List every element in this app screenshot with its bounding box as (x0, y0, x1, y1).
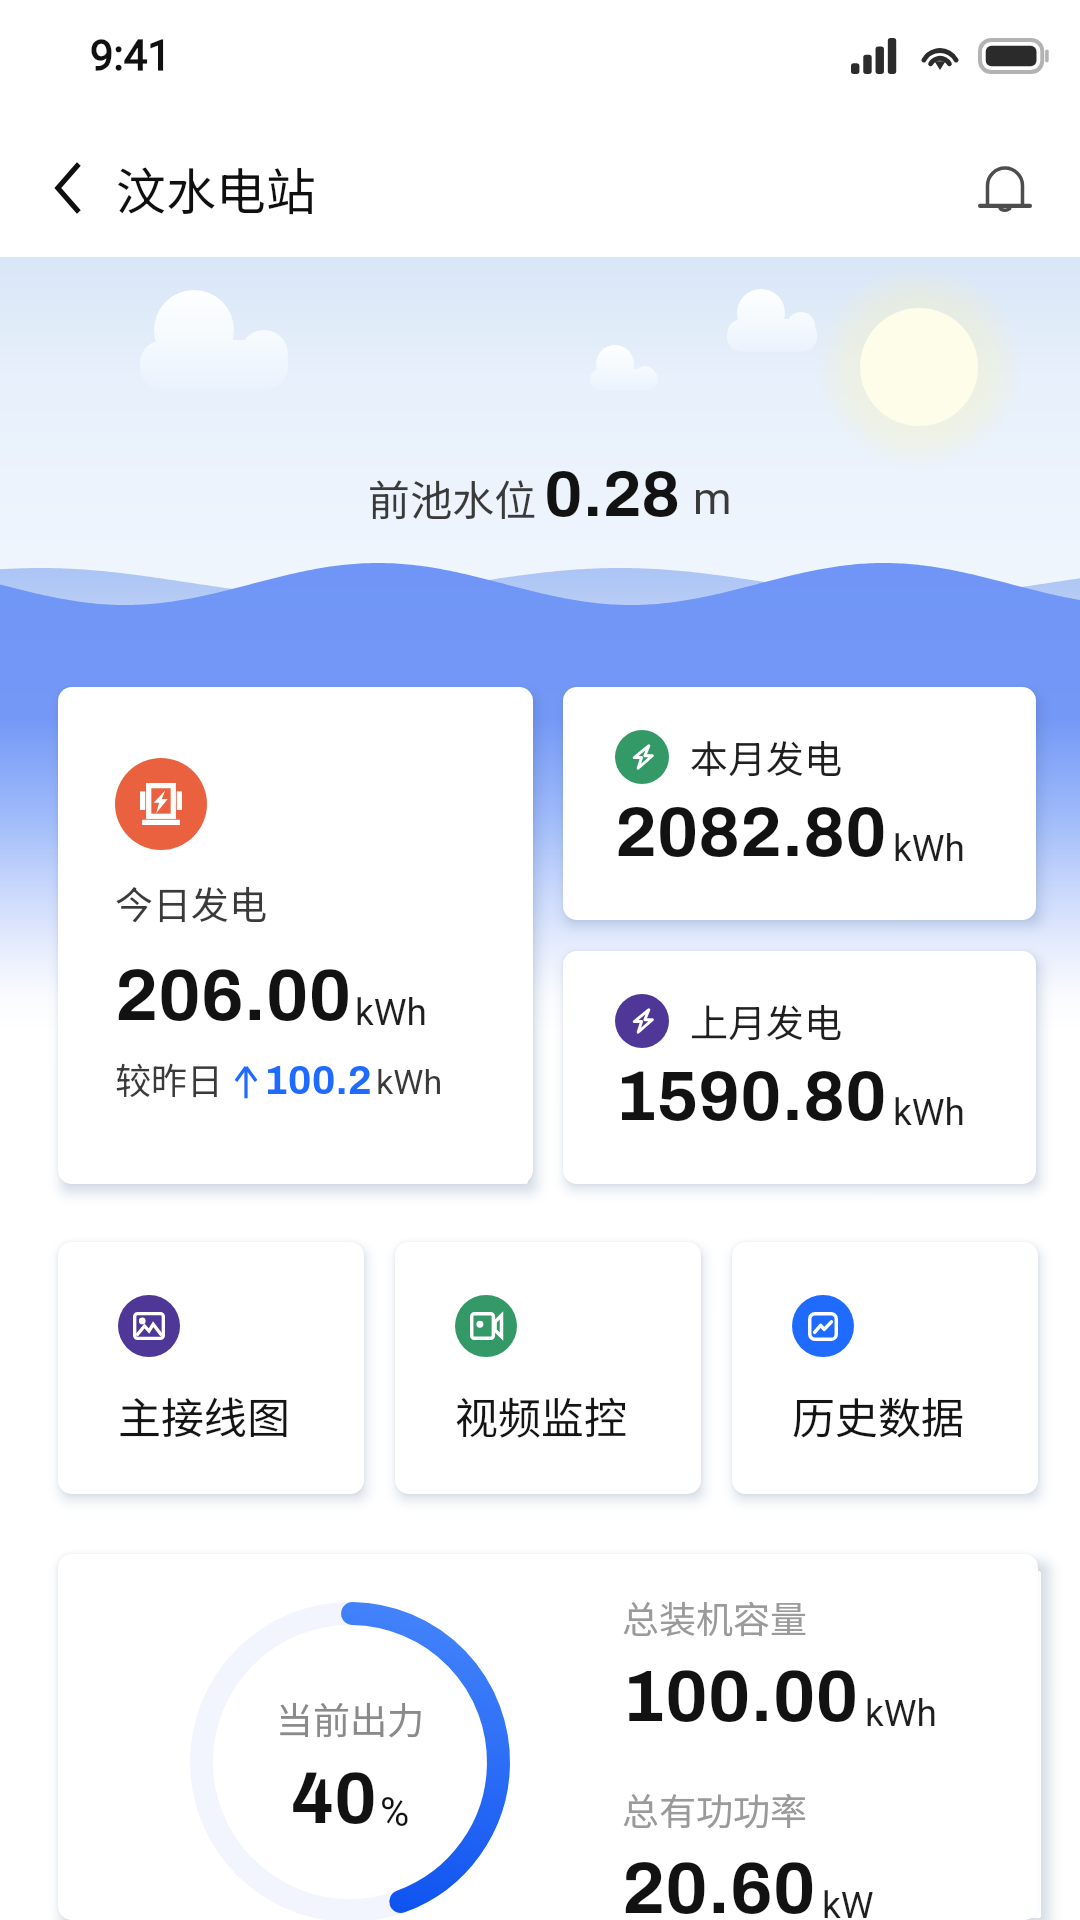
staticText: 100.2 (264, 1059, 372, 1103)
staticText: 主接线图 (118, 1384, 290, 1446)
staticText: 本月发电 (690, 729, 843, 784)
staticText: 1590.80 (615, 1059, 887, 1135)
button[interactable]: 历史数据 (732, 1242, 1038, 1494)
staticText: 总装机容量 (622, 1590, 807, 1644)
staticText: % (380, 1789, 410, 1836)
button[interactable]: 本月发电 (563, 687, 1036, 920)
staticText: 上月发电 (690, 993, 843, 1048)
staticText: 206.00 (115, 957, 352, 1035)
other: Back (38, 158, 98, 218)
staticText: 40 (291, 1760, 377, 1838)
staticText: 0.28 (544, 459, 681, 530)
staticText: 视频监控 (455, 1384, 627, 1446)
button[interactable]: 当前出力 (58, 1554, 1038, 1920)
staticText: 历史数据 (792, 1384, 964, 1446)
staticText: 当前出力 (276, 1691, 424, 1745)
button[interactable]: 上月发电 (563, 951, 1036, 1184)
staticText: 100.00 (622, 1658, 859, 1736)
staticText: 较昨日 (115, 1052, 224, 1104)
staticText: 总有功功率 (622, 1782, 807, 1836)
staticText: 汶水电站 (116, 152, 316, 224)
button[interactable]: 视频监控 (395, 1242, 701, 1494)
staticText: kWh (355, 991, 427, 1034)
button[interactable]: Back (38, 152, 316, 224)
staticText: 9:41 (90, 31, 171, 80)
staticText: 前池水位 (368, 467, 537, 528)
button[interactable]: 主接线图 (58, 1242, 364, 1494)
staticText: kWh (865, 1692, 937, 1735)
staticText: kWh (376, 1062, 443, 1102)
staticText: 20.60 (622, 1850, 816, 1920)
staticText: kWh (893, 1091, 965, 1134)
staticText: 2082.80 (615, 795, 887, 871)
staticText: kW (822, 1884, 874, 1920)
staticText: m (693, 473, 732, 525)
staticText: 今日发电 (115, 875, 268, 930)
button[interactable]: 今日发电 (58, 687, 533, 1184)
staticText: kWh (893, 827, 965, 870)
button[interactable]: Notifications (970, 153, 1040, 223)
